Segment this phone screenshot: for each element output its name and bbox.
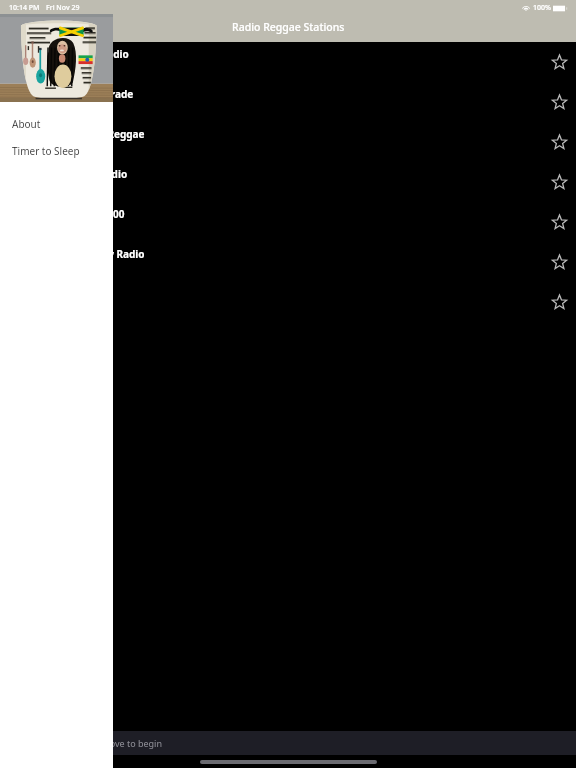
- staticText: Hot 102 FM Island Reggae: [16, 127, 542, 141]
- button[interactable]: Kingston Irie FM Radio: [0, 42, 576, 74]
- button[interactable]: Hot Reggae Radio 100: [0, 194, 576, 234]
- button[interactable]: About: [0, 111, 113, 137]
- staticText: Select a station from above to begin: [10, 737, 162, 749]
- staticText: Kingston Irie FM Radio: [16, 47, 542, 61]
- button[interactable]: Open navigation menu: [0, 14, 28, 42]
- button[interactable]: Add to favorites: [542, 74, 576, 114]
- staticText: Radio Reggae Stations: [232, 20, 345, 34]
- button[interactable]: Add to favorites: [542, 274, 576, 314]
- staticText: Fri Nov 29: [46, 3, 80, 13]
- staticText: About: [12, 117, 41, 131]
- staticText: Timer to Sleep: [12, 144, 80, 158]
- staticText: Jamaica Vibes Party Radio: [16, 247, 542, 261]
- button[interactable]: Hot 102 FM Island Reggae: [0, 114, 576, 154]
- button[interactable]: Timer to Sleep: [0, 138, 113, 164]
- button[interactable]: Add to favorites: [542, 194, 576, 234]
- staticText: Zion Hill Reggae Radio: [16, 167, 542, 181]
- staticText: Hot Reggae Radio 100: [16, 207, 542, 221]
- staticText: Reggae Top Hits Parade: [16, 87, 542, 101]
- staticText: Island Roots FM: [16, 287, 542, 301]
- staticText: 100%: [533, 3, 551, 13]
- button[interactable]: Reggae Top Hits Parade: [0, 74, 576, 114]
- button[interactable]: Add to favorites: [542, 154, 576, 194]
- button[interactable]: Zion Hill Reggae Radio: [0, 154, 576, 194]
- button[interactable]: Add to favorites: [542, 234, 576, 274]
- button[interactable]: Add to favorites: [542, 114, 576, 154]
- button[interactable]: Add to favorites: [542, 42, 576, 74]
- button[interactable]: Select a station from above to begin: [0, 731, 576, 755]
- button[interactable]: Jamaica Vibes Party Radio: [0, 234, 576, 274]
- staticText: 10:14 PM: [9, 3, 40, 13]
- button[interactable]: Island Roots FM: [0, 274, 576, 314]
